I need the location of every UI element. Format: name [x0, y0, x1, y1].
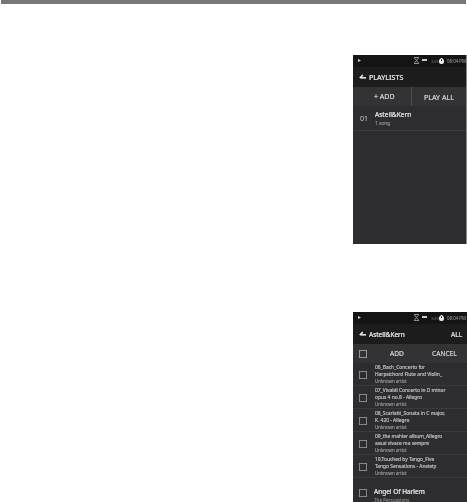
- staticText: Unknown artist: [375, 447, 407, 453]
- staticText: 08:04 PM: [447, 315, 467, 321]
- staticText: PLAY ALL: [424, 92, 454, 102]
- button[interactable]: 06_Bach_Concerto for: [353, 363, 467, 386]
- staticText: The Persuasions: [374, 497, 410, 502]
- staticText: K. 420 - Allegro: [375, 417, 410, 424]
- staticText: Angel Of Harlem: [374, 487, 425, 496]
- staticText: Astell&Kern: [369, 330, 405, 339]
- button[interactable]: ALL: [448, 327, 466, 342]
- button[interactable]: 09_the mahler album_Allegro: [353, 432, 467, 455]
- staticText: ADD: [390, 349, 404, 358]
- button[interactable]: Select all: [359, 350, 367, 358]
- staticText: Astell&Kern: [375, 110, 412, 119]
- button[interactable]: PLAY ALL: [411, 87, 466, 106]
- staticText: 1 song: [375, 120, 391, 127]
- staticText: Unknown artist: [375, 378, 407, 384]
- staticText: 07_Vivaldi Concerto in D minor: [375, 387, 446, 394]
- staticText: 06_Bach_Concerto for: [375, 364, 426, 371]
- staticText: Unknown artist: [375, 470, 407, 476]
- button[interactable]: + ADD: [355, 87, 413, 106]
- button[interactable]: Angel Of Harlem: [353, 478, 467, 502]
- staticText: 09_the mahler album_Allegro: [375, 433, 443, 440]
- staticText: opus 4 no.8 - Allegro: [375, 394, 423, 401]
- staticText: Unknown artist: [375, 401, 407, 407]
- staticText: 08:04 PM: [447, 58, 467, 64]
- staticText: 01: [360, 114, 369, 124]
- staticText: 34%: [431, 58, 440, 64]
- button[interactable]: 07_Vivaldi Concerto in D minor: [353, 386, 467, 409]
- staticText: 10.Touched by Tango_Five: [375, 456, 435, 463]
- staticText: Unknown artist: [375, 424, 407, 430]
- staticText: Tango Sensations - Anxiety: [375, 463, 437, 470]
- button[interactable]: CANCEL: [425, 344, 463, 363]
- staticText: 08_Scarlatti_Sonata in C major,: [375, 410, 445, 417]
- staticText: CANCEL: [432, 349, 457, 358]
- button[interactable]: Back: [359, 327, 366, 339]
- staticText: assai vivace ma sempre: [375, 440, 430, 447]
- button[interactable]: 10.Touched by Tango_Five: [353, 455, 467, 478]
- button[interactable]: ADD: [382, 344, 411, 363]
- button[interactable]: Back: [359, 70, 366, 82]
- staticText: Harpsichord Flute and Violin_: [375, 371, 443, 378]
- button[interactable]: 01: [353, 106, 466, 131]
- button[interactable]: 08_Scarlatti_Sonata in C major,: [353, 409, 467, 432]
- staticText: + ADD: [374, 92, 395, 102]
- staticText: 34%: [431, 315, 440, 321]
- staticText: PLAYLISTS: [369, 72, 404, 82]
- staticText: ALL: [451, 330, 463, 339]
